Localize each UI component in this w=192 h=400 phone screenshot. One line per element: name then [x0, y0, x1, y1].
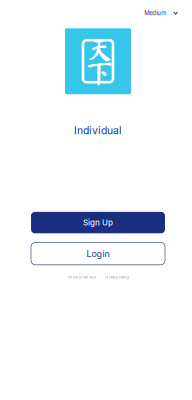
staticText: 天 [86, 36, 113, 62]
staticText: 天 [86, 36, 113, 62]
button[interactable]: Sign Up [31, 212, 165, 233]
staticText: · [100, 275, 101, 279]
staticText: Medium [144, 9, 166, 17]
staticText: 下 [86, 60, 113, 87]
staticText: 天 [86, 36, 113, 63]
staticText: Privacy Policy [105, 275, 129, 279]
staticText: 下 [86, 60, 113, 87]
staticText: Individual [74, 124, 122, 137]
staticText: Sign Up [83, 218, 113, 227]
staticText: 下 [86, 61, 113, 87]
staticText: Terms of Service [67, 275, 96, 279]
button[interactable]: Medium [142, 7, 180, 19]
button[interactable]: Terms of Service [67, 275, 96, 279]
button[interactable]: Privacy Policy [105, 275, 129, 279]
button[interactable]: Login [31, 242, 165, 265]
staticText: Login [86, 248, 109, 259]
